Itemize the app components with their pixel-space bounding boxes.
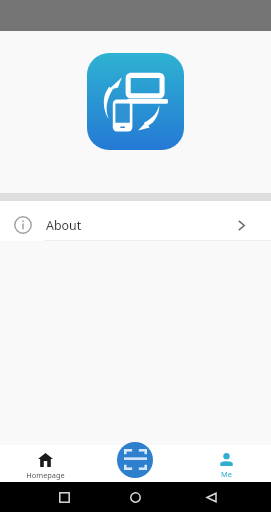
staticText: Homepage <box>26 470 65 480</box>
button[interactable]: Back <box>206 492 217 503</box>
button[interactable]: Homepage <box>0 445 91 482</box>
button[interactable]: Recents <box>59 492 70 503</box>
button[interactable]: Scan <box>117 442 153 478</box>
button[interactable]: About <box>0 201 271 241</box>
button[interactable]: Home <box>130 492 141 503</box>
button[interactable]: Me <box>181 445 271 482</box>
staticText: Me <box>221 469 232 479</box>
staticText: About <box>46 217 82 234</box>
